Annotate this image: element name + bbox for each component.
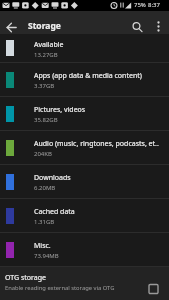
staticText: Cached data xyxy=(34,207,165,217)
staticText: Storage xyxy=(28,20,61,32)
staticText: 75% xyxy=(134,1,146,9)
button[interactable]: Apps (app data & media content) xyxy=(0,63,169,96)
staticText: 204KB xyxy=(34,150,52,158)
staticText: 13.27GB xyxy=(34,51,58,59)
staticText: 6.20MB xyxy=(34,184,56,192)
button[interactable]: Cached data xyxy=(0,199,169,232)
staticText: OTG storage xyxy=(5,273,46,283)
staticText: 73.94MB xyxy=(34,252,59,260)
staticText: 3.37GB xyxy=(34,82,55,90)
button[interactable]: Misc. xyxy=(0,233,169,266)
button[interactable] xyxy=(152,19,166,34)
staticText: Audio (music, ringtones, podcasts, et.. xyxy=(34,139,165,149)
button[interactable]: Pictures, videos xyxy=(0,97,169,130)
button[interactable] xyxy=(130,20,145,34)
staticText: 8:37 xyxy=(148,1,160,9)
staticText: Available xyxy=(34,40,165,50)
staticText: Enable reading external storage via OTG xyxy=(5,284,115,292)
staticText: Pictures, videos xyxy=(34,105,165,115)
button[interactable]: Audio (music, ringtones, podcasts, et.. xyxy=(0,131,169,164)
staticText: Apps (app data & media content) xyxy=(34,71,165,81)
button[interactable]: OTG storage xyxy=(0,267,169,300)
staticText: Misc. xyxy=(34,241,165,251)
staticText: Downloads xyxy=(34,173,165,183)
button[interactable]: Available xyxy=(0,34,169,62)
staticText: 1.31GB xyxy=(34,218,55,226)
staticText: 35.82GB xyxy=(34,116,58,124)
button[interactable] xyxy=(3,19,20,34)
button[interactable]: Downloads xyxy=(0,165,169,198)
